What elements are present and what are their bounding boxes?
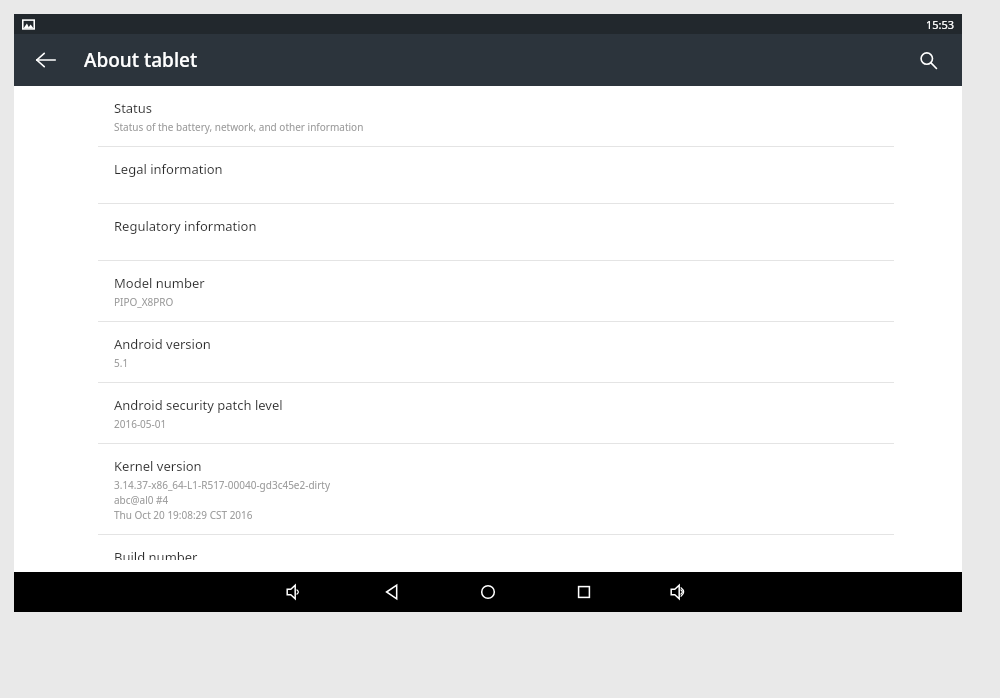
staticText: Android version <box>114 335 211 353</box>
button[interactable]: Android version <box>98 322 894 382</box>
button[interactable]: Legal information <box>98 147 894 203</box>
button[interactable]: Android security patch level <box>98 383 894 443</box>
staticText: Model number <box>114 274 205 292</box>
button[interactable]: Build number <box>98 535 894 572</box>
button[interactable]: Regulatory information <box>98 204 894 260</box>
staticText: Thu Oct 20 19:08:29 CST 2016 <box>114 508 253 522</box>
staticText: Build number <box>114 548 198 560</box>
button[interactable]: Kernel version <box>98 444 894 534</box>
staticText: Regulatory information <box>114 217 257 235</box>
staticText: 15:53 <box>926 17 955 32</box>
button[interactable]: Back <box>22 36 70 84</box>
button[interactable]: Back <box>368 572 416 612</box>
button[interactable]: Search <box>904 36 952 84</box>
button[interactable]: Model number <box>98 261 894 321</box>
staticText: Status <box>114 99 153 117</box>
staticText: abc@al0 #4 <box>114 493 169 507</box>
button[interactable]: Recents <box>560 572 608 612</box>
staticText: Status of the battery, network, and othe… <box>114 120 364 134</box>
staticText: Android security patch level <box>114 396 283 414</box>
staticText: Kernel version <box>114 457 202 475</box>
staticText: 3.14.37-x86_64-L1-R517-00040-gd3c45e2-di… <box>114 478 331 492</box>
staticText: 2016-05-01 <box>114 417 167 431</box>
button[interactable]: Volume up <box>656 572 704 612</box>
button[interactable]: Home <box>464 572 512 612</box>
staticText: 5.1 <box>114 356 129 370</box>
button[interactable]: Volume down <box>272 572 320 612</box>
button[interactable]: Status <box>98 86 894 146</box>
staticText: Legal information <box>114 160 223 178</box>
staticText: PIPO_X8PRO <box>114 295 174 309</box>
staticText: About tablet <box>84 47 198 73</box>
